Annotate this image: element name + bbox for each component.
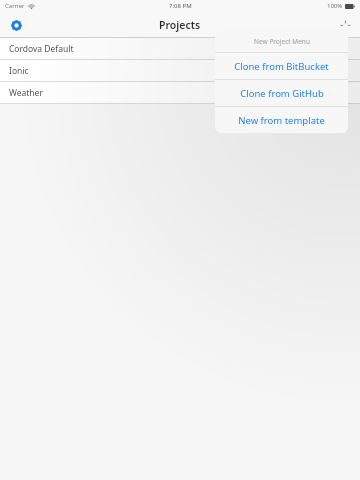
staticText: Clone from GitHub: [240, 87, 324, 100]
staticText: 100%: [327, 2, 343, 10]
button[interactable]: Cordova Default: [0, 38, 360, 59]
staticText: Clone from BitBucket: [234, 60, 329, 73]
button[interactable]: Weather: [0, 82, 360, 103]
button[interactable]: Add project: [336, 16, 354, 34]
button[interactable]: Clone from BitBucket: [215, 53, 348, 79]
staticText: Cordova Default: [9, 43, 74, 55]
staticText: New from template: [238, 114, 325, 127]
button[interactable]: Settings: [7, 16, 25, 34]
button[interactable]: New from template: [215, 107, 348, 133]
button[interactable]: Ionic: [0, 60, 360, 81]
button[interactable]: Clone from GitHub: [215, 80, 348, 106]
staticText: Carrier: [5, 2, 25, 10]
staticText: New Project Menu: [254, 37, 310, 46]
staticText: 7:08 PM: [169, 2, 192, 10]
staticText: Projects: [159, 18, 201, 32]
staticText: Weather: [9, 87, 43, 99]
staticText: Ionic: [9, 65, 29, 77]
